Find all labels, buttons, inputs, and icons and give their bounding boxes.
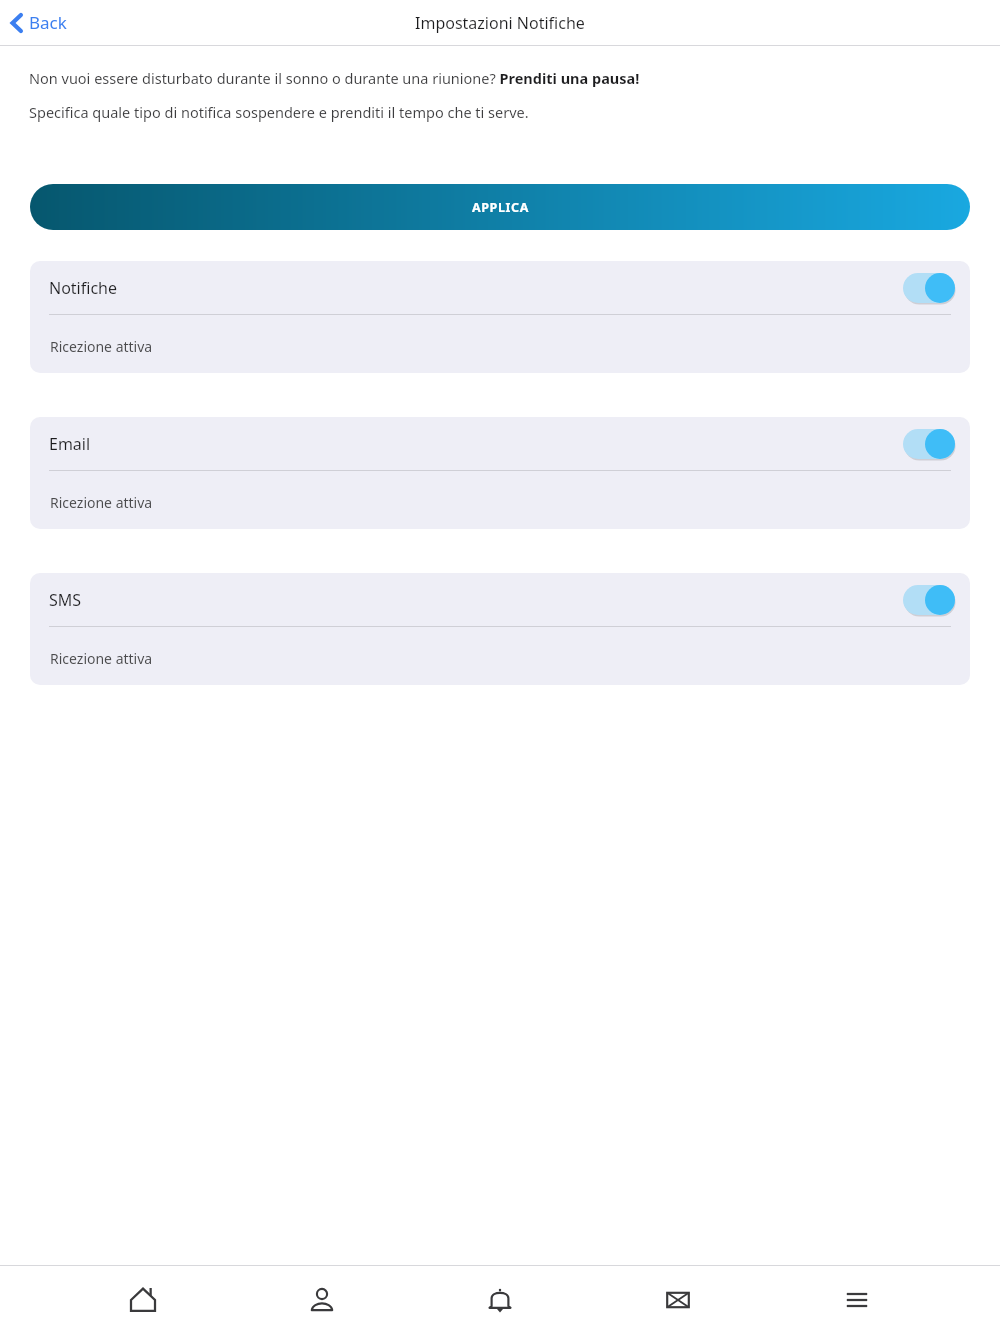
staticText: APPLICA — [472, 199, 529, 216]
staticText: Email — [49, 433, 91, 455]
button[interactable]: Toggle Email — [903, 429, 955, 459]
button[interactable]: Back — [6, 7, 71, 38]
staticText: Notifiche — [49, 277, 117, 299]
button[interactable]: Toggle SMS — [903, 585, 955, 615]
staticText: Ricezione attiva — [50, 493, 153, 512]
button[interactable]: Profile — [287, 1271, 357, 1329]
button[interactable]: APPLICA — [30, 184, 970, 230]
staticText: Specifica quale tipo di notifica sospend… — [29, 102, 529, 122]
button[interactable]: Email — [30, 417, 970, 529]
staticText: Ricezione attiva — [50, 649, 153, 668]
button[interactable]: SMS — [30, 573, 970, 685]
button[interactable]: Home — [108, 1271, 178, 1329]
staticText: SMS — [49, 589, 82, 611]
staticText: Back — [29, 11, 67, 34]
button[interactable]: Notifiche — [30, 261, 970, 373]
staticText: Impostazioni Notifiche — [415, 12, 585, 34]
button[interactable]: Menu — [822, 1271, 892, 1329]
staticText: Ricezione attiva — [50, 337, 153, 356]
staticText: Non vuoi essere disturbato durante il so… — [29, 68, 640, 88]
button[interactable]: Notifications — [465, 1271, 535, 1329]
button[interactable]: Messages — [643, 1271, 713, 1329]
button[interactable]: Toggle Notifiche — [903, 273, 955, 303]
